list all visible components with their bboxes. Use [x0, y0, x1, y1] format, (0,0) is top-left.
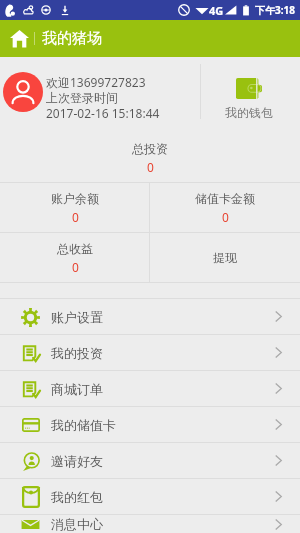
staticText: 邀请好友 [51, 453, 103, 469]
staticText: 储值卡金额 [195, 191, 255, 206]
staticText: 我的投资 [51, 345, 103, 361]
staticText: 0 [72, 259, 79, 275]
button[interactable]: Home [6, 25, 33, 52]
staticText: 0 [72, 209, 79, 225]
staticText: 账户设置 [51, 309, 103, 325]
staticText: 提现 [213, 250, 237, 265]
button[interactable]: 我的投资 [0, 334, 300, 370]
button[interactable]: 提现 [150, 233, 300, 282]
staticText: 4G [209, 3, 224, 18]
button[interactable]: 邀请好友 [0, 442, 300, 478]
button[interactable]: 总收益 [0, 233, 149, 282]
staticText: 2017-02-16 15:18:44 [46, 105, 160, 121]
staticText: 上次登录时间 [46, 90, 118, 105]
staticText: 我的猪场 [42, 29, 102, 48]
staticText: 总投资 [132, 141, 168, 156]
staticText: 我的钱包 [225, 105, 273, 120]
staticText: 0 [222, 209, 229, 225]
staticText: 账户余额 [51, 191, 99, 206]
button[interactable]: 商城订单 [0, 370, 300, 406]
button[interactable]: 账户设置 [0, 298, 300, 334]
button[interactable]: 我的储值卡 [0, 406, 300, 442]
staticText: 0 [147, 159, 154, 175]
staticText: 商城订单 [51, 381, 103, 397]
staticText: 欢迎13699727823 [46, 74, 146, 90]
button[interactable]: 消息中心 [0, 514, 300, 533]
staticText: 我的红包 [51, 489, 103, 505]
button[interactable]: 账户余额 [0, 183, 149, 232]
button[interactable]: 我的红包 [0, 478, 300, 514]
staticText: 消息中心 [51, 516, 103, 532]
staticText: 下午3:18 [255, 3, 295, 17]
button[interactable]: 储值卡金额 [150, 183, 300, 232]
staticText: 总收益 [57, 241, 93, 256]
button[interactable]: 我的钱包 [201, 57, 300, 126]
staticText: 我的储值卡 [51, 417, 116, 433]
